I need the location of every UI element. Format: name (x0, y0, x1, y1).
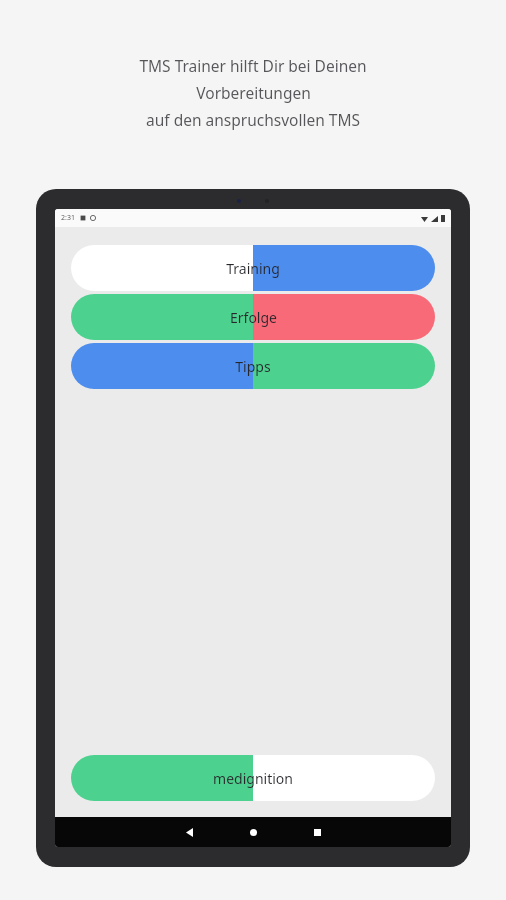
button[interactable]: Tipps (71, 343, 435, 389)
staticText: Vorbereitungen (196, 82, 311, 103)
staticText: TMS Trainer hilft Dir bei Deinen (139, 55, 367, 76)
staticText: Erfolge (230, 308, 277, 327)
staticText: auf den anspruchsvollen TMS (146, 109, 360, 130)
staticText: Training (226, 259, 280, 278)
button[interactable]: Recent apps (294, 817, 340, 847)
button[interactable]: Back (166, 817, 212, 847)
staticText: Tipps (235, 357, 271, 376)
button[interactable]: Home (230, 817, 276, 847)
button[interactable]: Training (71, 245, 435, 291)
button[interactable]: medignition (71, 755, 435, 801)
staticText: medignition (213, 769, 293, 788)
button[interactable]: Erfolge (71, 294, 435, 340)
staticText: 2:31 (61, 213, 75, 223)
